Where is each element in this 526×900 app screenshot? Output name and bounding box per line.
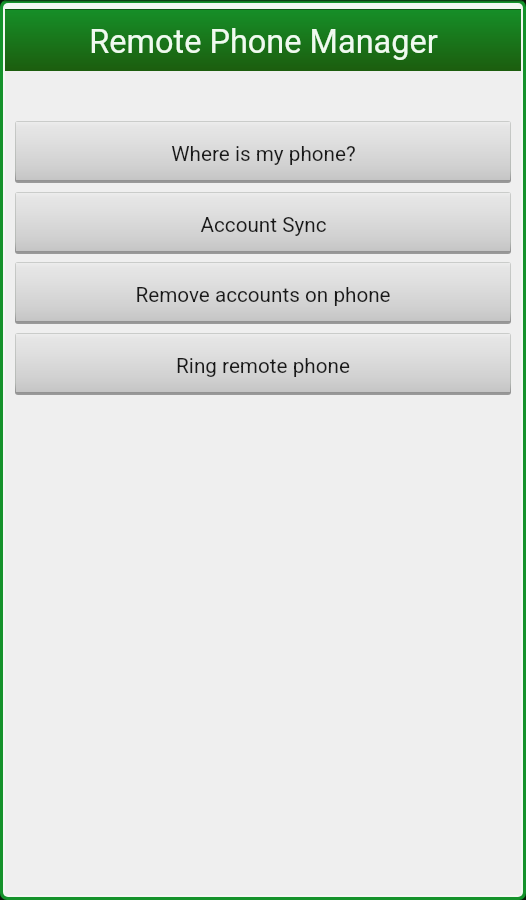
staticText: Account Sync bbox=[200, 213, 327, 237]
staticText: Remove accounts on phone bbox=[135, 283, 391, 307]
staticText: Remote Phone Manager bbox=[89, 23, 438, 61]
button[interactable]: Where is my phone? bbox=[16, 122, 510, 180]
button[interactable]: Remove accounts on phone bbox=[16, 263, 510, 321]
button[interactable]: Ring remote phone bbox=[16, 334, 510, 392]
staticText: Ring remote phone bbox=[176, 354, 350, 378]
button[interactable]: Account Sync bbox=[16, 193, 510, 251]
staticText: Where is my phone? bbox=[171, 142, 356, 166]
